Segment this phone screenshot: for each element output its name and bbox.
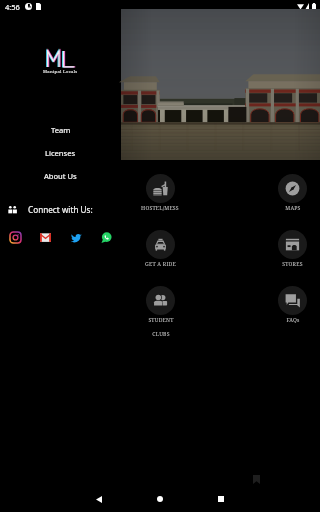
staticText: Manipal Locals — [43, 69, 78, 75]
button[interactable]: HOSTEL/MESS — [141, 174, 179, 211]
button[interactable]: Back — [88, 488, 110, 510]
button[interactable]: WhatsApp — [96, 227, 116, 247]
button[interactable]: About Us — [0, 169, 121, 183]
button[interactable]: FAQs — [278, 286, 307, 323]
staticText: Team — [51, 125, 71, 135]
button[interactable]: MAPS — [278, 174, 307, 211]
staticText: 4:56 — [5, 2, 20, 12]
button[interactable]: STUDENT CLUBS — [146, 286, 175, 338]
staticText: GET A RIDE — [145, 260, 176, 267]
button[interactable]: STORES — [278, 230, 307, 267]
button[interactable]: Team — [0, 123, 121, 137]
button[interactable]: Bookmark — [252, 474, 260, 484]
staticText: About Us — [44, 171, 77, 181]
staticText: STUDENT CLUBS — [148, 316, 174, 338]
button[interactable]: GET A RIDE — [145, 230, 176, 267]
button[interactable]: Email — [35, 227, 55, 247]
staticText: STORES — [282, 260, 303, 267]
staticText: HOSTEL/MESS — [141, 204, 179, 211]
button[interactable]: Instagram — [5, 227, 25, 247]
staticText: Licenses — [45, 148, 76, 158]
button[interactable]: Recents — [210, 488, 232, 510]
staticText: Connect with Us: — [28, 204, 93, 215]
button[interactable]: Twitter — [66, 227, 86, 247]
button[interactable]: Home — [149, 488, 171, 510]
staticText: FAQs — [286, 316, 300, 323]
button[interactable]: Licenses — [0, 146, 121, 160]
staticText: MAPS — [285, 204, 301, 211]
